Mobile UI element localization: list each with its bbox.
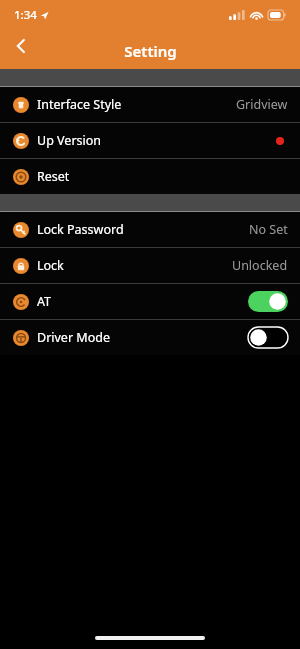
button[interactable]: Toggle off: [248, 327, 288, 348]
staticText: Driver Mode: [37, 329, 110, 346]
button[interactable]: AT: [0, 284, 300, 319]
button[interactable]: Driver Mode: [0, 320, 300, 355]
button[interactable]: Up Version: [0, 123, 300, 158]
staticText: Reset: [37, 168, 70, 185]
staticText: Lock Password: [37, 221, 124, 238]
button[interactable]: Interface Style: [0, 87, 300, 122]
button[interactable]: Lock Password: [0, 212, 300, 247]
button[interactable]: Reset: [0, 159, 300, 194]
staticText: AT: [37, 293, 52, 310]
staticText: Interface Style: [37, 96, 122, 113]
staticText: Lock: [37, 257, 64, 274]
staticText: Gridview: [236, 96, 288, 113]
staticText: No Set: [249, 221, 288, 238]
staticText: Unlocked: [232, 257, 288, 274]
button[interactable]: Lock: [0, 248, 300, 283]
staticText: Setting: [124, 41, 177, 61]
button[interactable]: Toggle on: [248, 291, 288, 312]
staticText: 1:34: [14, 7, 37, 23]
staticText: Up Version: [37, 132, 102, 149]
button[interactable]: Back: [0, 25, 42, 67]
